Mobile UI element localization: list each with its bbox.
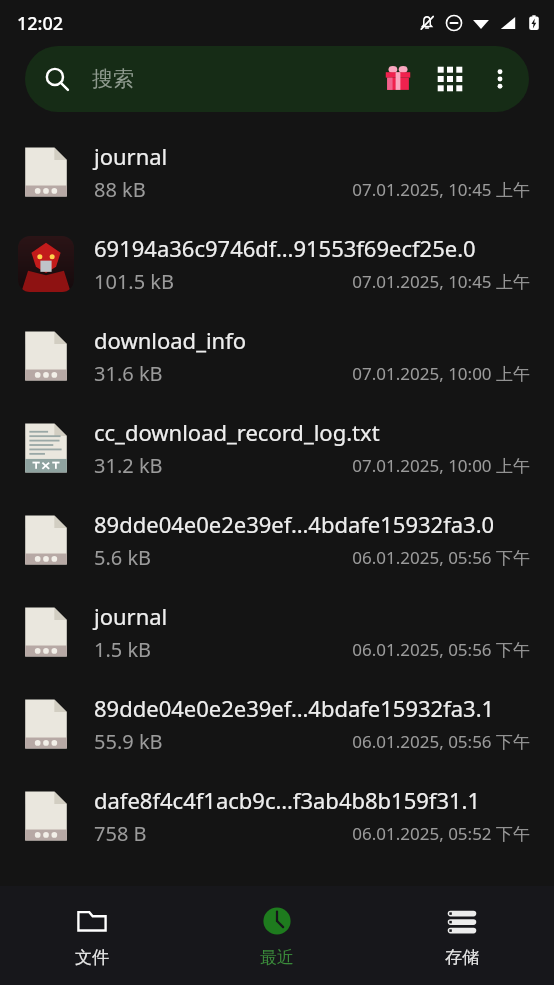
- button[interactable]: dafe8f4c4f1acb9c…f3ab4b8b159f31.1: [0, 770, 554, 862]
- staticText: 文件: [75, 947, 109, 968]
- staticText: 101.5 kB: [94, 268, 174, 295]
- staticText: cc_download_record_log.txt: [94, 417, 380, 447]
- staticText: 存储: [445, 947, 479, 968]
- staticText: 07.01.2025, 10:45 上午: [352, 178, 530, 201]
- staticText: 最近: [260, 947, 294, 968]
- button[interactable]: Grid view: [435, 64, 465, 94]
- staticText: 搜索: [92, 66, 134, 92]
- button[interactable]: journal: [0, 126, 554, 218]
- staticText: 31.2 kB: [94, 452, 163, 479]
- staticText: 69194a36c9746df…91553f69ecf25e.0: [94, 233, 476, 263]
- button[interactable]: More options: [485, 64, 515, 94]
- staticText: journal: [94, 141, 168, 171]
- staticText: 06.01.2025, 05:52 下午: [352, 822, 530, 845]
- staticText: 06.01.2025, 05:56 下午: [352, 546, 530, 569]
- button[interactable]: download_info: [0, 310, 554, 402]
- button[interactable]: Search: [25, 46, 529, 112]
- staticText: 89dde04e0e2e39ef…4bdafe15932fa3.0: [94, 509, 495, 539]
- staticText: 07.01.2025, 10:00 上午: [352, 454, 530, 477]
- staticText: 5.6 kB: [94, 544, 152, 571]
- button[interactable]: 89dde04e0e2e39ef…4bdafe15932fa3.1: [0, 678, 554, 770]
- staticText: 758 B: [94, 820, 147, 847]
- staticText: journal: [94, 601, 168, 631]
- button[interactable]: 文件: [0, 886, 184, 985]
- staticText: 89dde04e0e2e39ef…4bdafe15932fa3.1: [94, 693, 495, 723]
- staticText: 07.01.2025, 10:00 上午: [352, 362, 530, 385]
- button[interactable]: Gift: [381, 62, 415, 96]
- staticText: 07.01.2025, 10:45 上午: [352, 270, 530, 293]
- staticText: 06.01.2025, 05:56 下午: [352, 638, 530, 661]
- button[interactable]: 最近: [184, 886, 369, 985]
- button[interactable]: journal: [0, 586, 554, 678]
- button[interactable]: cc_download_record_log.txt: [0, 402, 554, 494]
- button[interactable]: 69194a36c9746df…91553f69ecf25e.0: [0, 218, 554, 310]
- other: Search: [44, 66, 70, 92]
- staticText: 88 kB: [94, 176, 146, 203]
- staticText: 55.9 kB: [94, 728, 163, 755]
- staticText: 06.01.2025, 05:56 下午: [352, 730, 530, 753]
- button[interactable]: 存储: [369, 886, 554, 985]
- staticText: download_info: [94, 325, 247, 355]
- staticText: 1.5 kB: [94, 636, 152, 663]
- staticText: 12:02: [17, 11, 64, 36]
- staticText: 31.6 kB: [94, 360, 163, 387]
- staticText: dafe8f4c4f1acb9c…f3ab4b8b159f31.1: [94, 785, 481, 815]
- button[interactable]: 89dde04e0e2e39ef…4bdafe15932fa3.0: [0, 494, 554, 586]
